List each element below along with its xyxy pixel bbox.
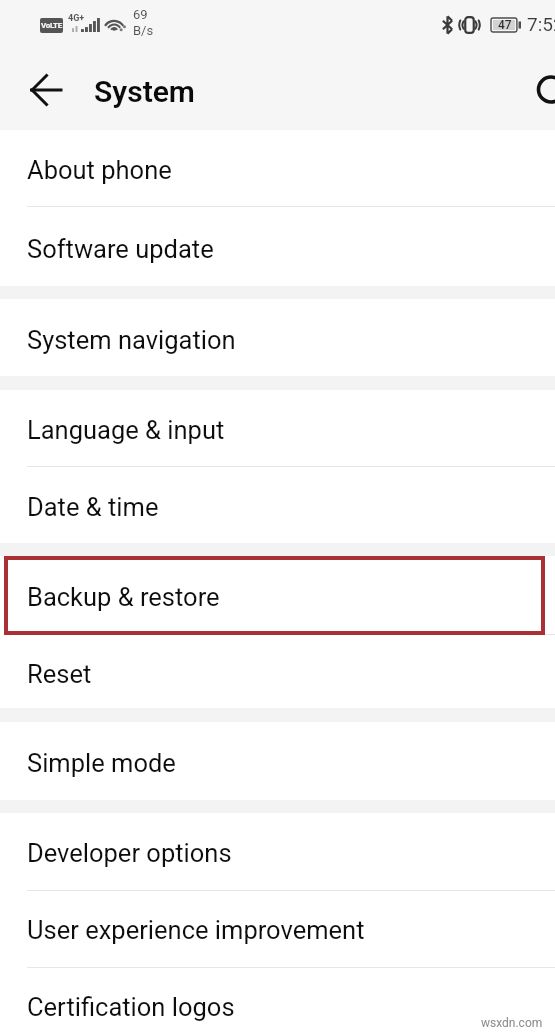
button[interactable]: Developer options (0, 813, 555, 891)
button[interactable]: Date & time (0, 467, 555, 543)
staticText: wsxdn.com (481, 1016, 543, 1030)
staticText: System navigation (27, 325, 236, 355)
staticText: System (94, 74, 195, 109)
staticText: Reset (27, 659, 92, 689)
staticText: Language & input (27, 415, 225, 445)
staticText: Backup & restore (27, 582, 220, 612)
button[interactable]: Backup & restore (0, 556, 555, 635)
button[interactable]: Search (523, 61, 555, 117)
staticText: 69 (133, 7, 148, 22)
staticText: B/s (133, 23, 154, 38)
staticText: 47 (498, 18, 512, 32)
button[interactable]: Simple mode (0, 722, 555, 800)
staticText: Certification logos (27, 992, 235, 1022)
button[interactable]: Certification logos (0, 968, 555, 1035)
staticText: VoLTE (41, 21, 62, 30)
button[interactable]: User experience improvement (0, 891, 555, 968)
staticText: User experience improvement (27, 915, 365, 945)
staticText: 7:52 (527, 13, 555, 35)
staticText: Date & time (27, 492, 159, 522)
staticText: Developer options (27, 838, 232, 868)
button[interactable]: Reset (0, 635, 555, 708)
staticText: Software update (27, 234, 214, 264)
button[interactable]: About phone (0, 130, 555, 207)
button[interactable]: Language & input (0, 390, 555, 467)
button[interactable]: Back (19, 63, 73, 117)
staticText: 4G+ (68, 13, 85, 24)
button[interactable]: Software update (0, 207, 555, 286)
staticText: About phone (27, 155, 172, 185)
button[interactable]: System navigation (0, 299, 555, 376)
staticText: Simple mode (27, 748, 176, 778)
